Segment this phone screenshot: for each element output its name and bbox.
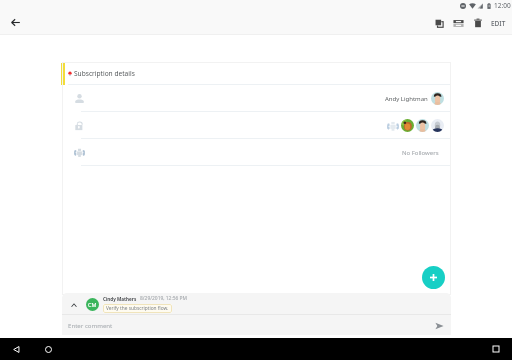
staticText: Subscription details [74,69,135,78]
staticText: 8/29/2019, 12:56 PM [140,295,187,302]
button[interactable]: Send [433,319,446,332]
button[interactable]: Add [422,266,445,289]
staticText: No Followers [402,149,439,157]
button[interactable] [62,112,451,139]
staticText: Cindy Mathers [103,296,137,302]
button[interactable]: No Followers [62,139,451,166]
button[interactable]: Duplicate [429,13,449,33]
staticText: 12:00 [494,1,511,10]
button[interactable]: Delete [468,13,488,33]
button[interactable]: Andy Lightman [62,85,451,112]
button[interactable]: Back [5,12,25,32]
button[interactable]: Back [8,341,24,357]
button[interactable]: Recents [488,341,504,357]
staticText: Andy Lightman [385,95,428,103]
staticText: Enter comment [68,321,113,329]
staticText: CM [88,301,97,308]
staticText: EDIT [491,19,506,28]
button[interactable]: Home [40,341,56,357]
button[interactable]: EDIT [486,13,510,33]
button[interactable]: Collapse [67,298,80,311]
button[interactable]: Split view [448,13,468,33]
staticText: Verify the subscription flow. [106,305,169,312]
